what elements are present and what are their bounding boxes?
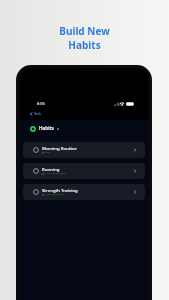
staticText: Habits <box>68 38 101 52</box>
staticText: Daily <box>45 151 51 154</box>
staticText: 1 day every week <box>45 193 64 196</box>
staticText: Habits <box>39 125 54 132</box>
staticText: Strength Training <box>42 187 78 193</box>
staticText: Morning Routine <box>42 145 77 151</box>
other: Open <box>133 148 137 152</box>
other: Open <box>133 190 137 194</box>
staticText: 8:06 <box>37 101 45 106</box>
button[interactable]: Running <box>23 163 145 179</box>
staticText: Running <box>42 166 60 172</box>
staticText: Build New <box>59 24 110 38</box>
button[interactable]: Strength Training <box>23 184 145 200</box>
button[interactable]: Morning Routine <box>23 142 145 158</box>
button[interactable]: Back <box>28 110 42 118</box>
other: Open <box>133 169 137 173</box>
staticText: 3 days active streak <box>45 172 66 175</box>
staticText: Back <box>34 112 41 116</box>
